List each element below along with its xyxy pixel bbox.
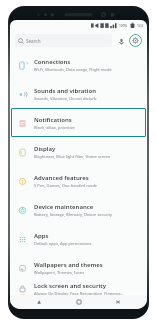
staticText: Sounds, Vibration, Do not disturb (34, 96, 97, 101)
staticText: S Pen, Games, One-handed mode (34, 183, 98, 188)
button[interactable]: Lock screen and security (11, 282, 146, 295)
staticText: Always On Display, Face Recognition, Fin… (34, 291, 123, 295)
button[interactable]: Apps (11, 224, 146, 253)
staticText: Block, allow, prioritize (34, 125, 75, 130)
button[interactable]: Back (108, 295, 128, 309)
staticText: Device maintenance (34, 203, 94, 211)
button[interactable]: Advanced features (11, 166, 146, 195)
staticText: Wallpapers and themes (34, 261, 103, 269)
button[interactable]: Settings (129, 34, 142, 47)
button[interactable]: Home (69, 295, 89, 309)
staticText: 100% (119, 24, 128, 28)
button[interactable]: Voice search (115, 35, 127, 47)
staticText: Default apps, App permissions (34, 241, 92, 246)
staticText: Notifications (34, 116, 72, 124)
button[interactable]: Display (11, 137, 146, 166)
staticText: Advanced features (34, 174, 89, 182)
staticText: Brightness, Blue light filter, Home scre… (34, 154, 111, 159)
staticText: Battery, Storage, Memory, Device securit… (34, 212, 113, 217)
button[interactable]: Recents (29, 295, 49, 309)
staticText: Display (34, 145, 56, 153)
button[interactable]: Sounds and vibration (11, 79, 146, 108)
button[interactable]: Search (15, 34, 112, 47)
staticText: Connections (34, 58, 71, 66)
button[interactable]: Connections (11, 50, 146, 79)
staticText: 14:2 (137, 24, 144, 28)
staticText: Wi-Fi, Bluetooth, Data usage, Flight mod… (34, 67, 112, 72)
staticText: Wallpapers, Themes, Icons (34, 270, 85, 275)
button[interactable]: Device maintenance (11, 195, 146, 224)
button[interactable]: Notifications (11, 108, 146, 137)
button[interactable]: Wallpapers and themes (11, 253, 146, 282)
staticText: Lock screen and security (34, 282, 106, 290)
staticText: Apps (34, 232, 49, 240)
staticText: Search (26, 38, 41, 44)
staticText: Sounds and vibration (34, 87, 96, 95)
